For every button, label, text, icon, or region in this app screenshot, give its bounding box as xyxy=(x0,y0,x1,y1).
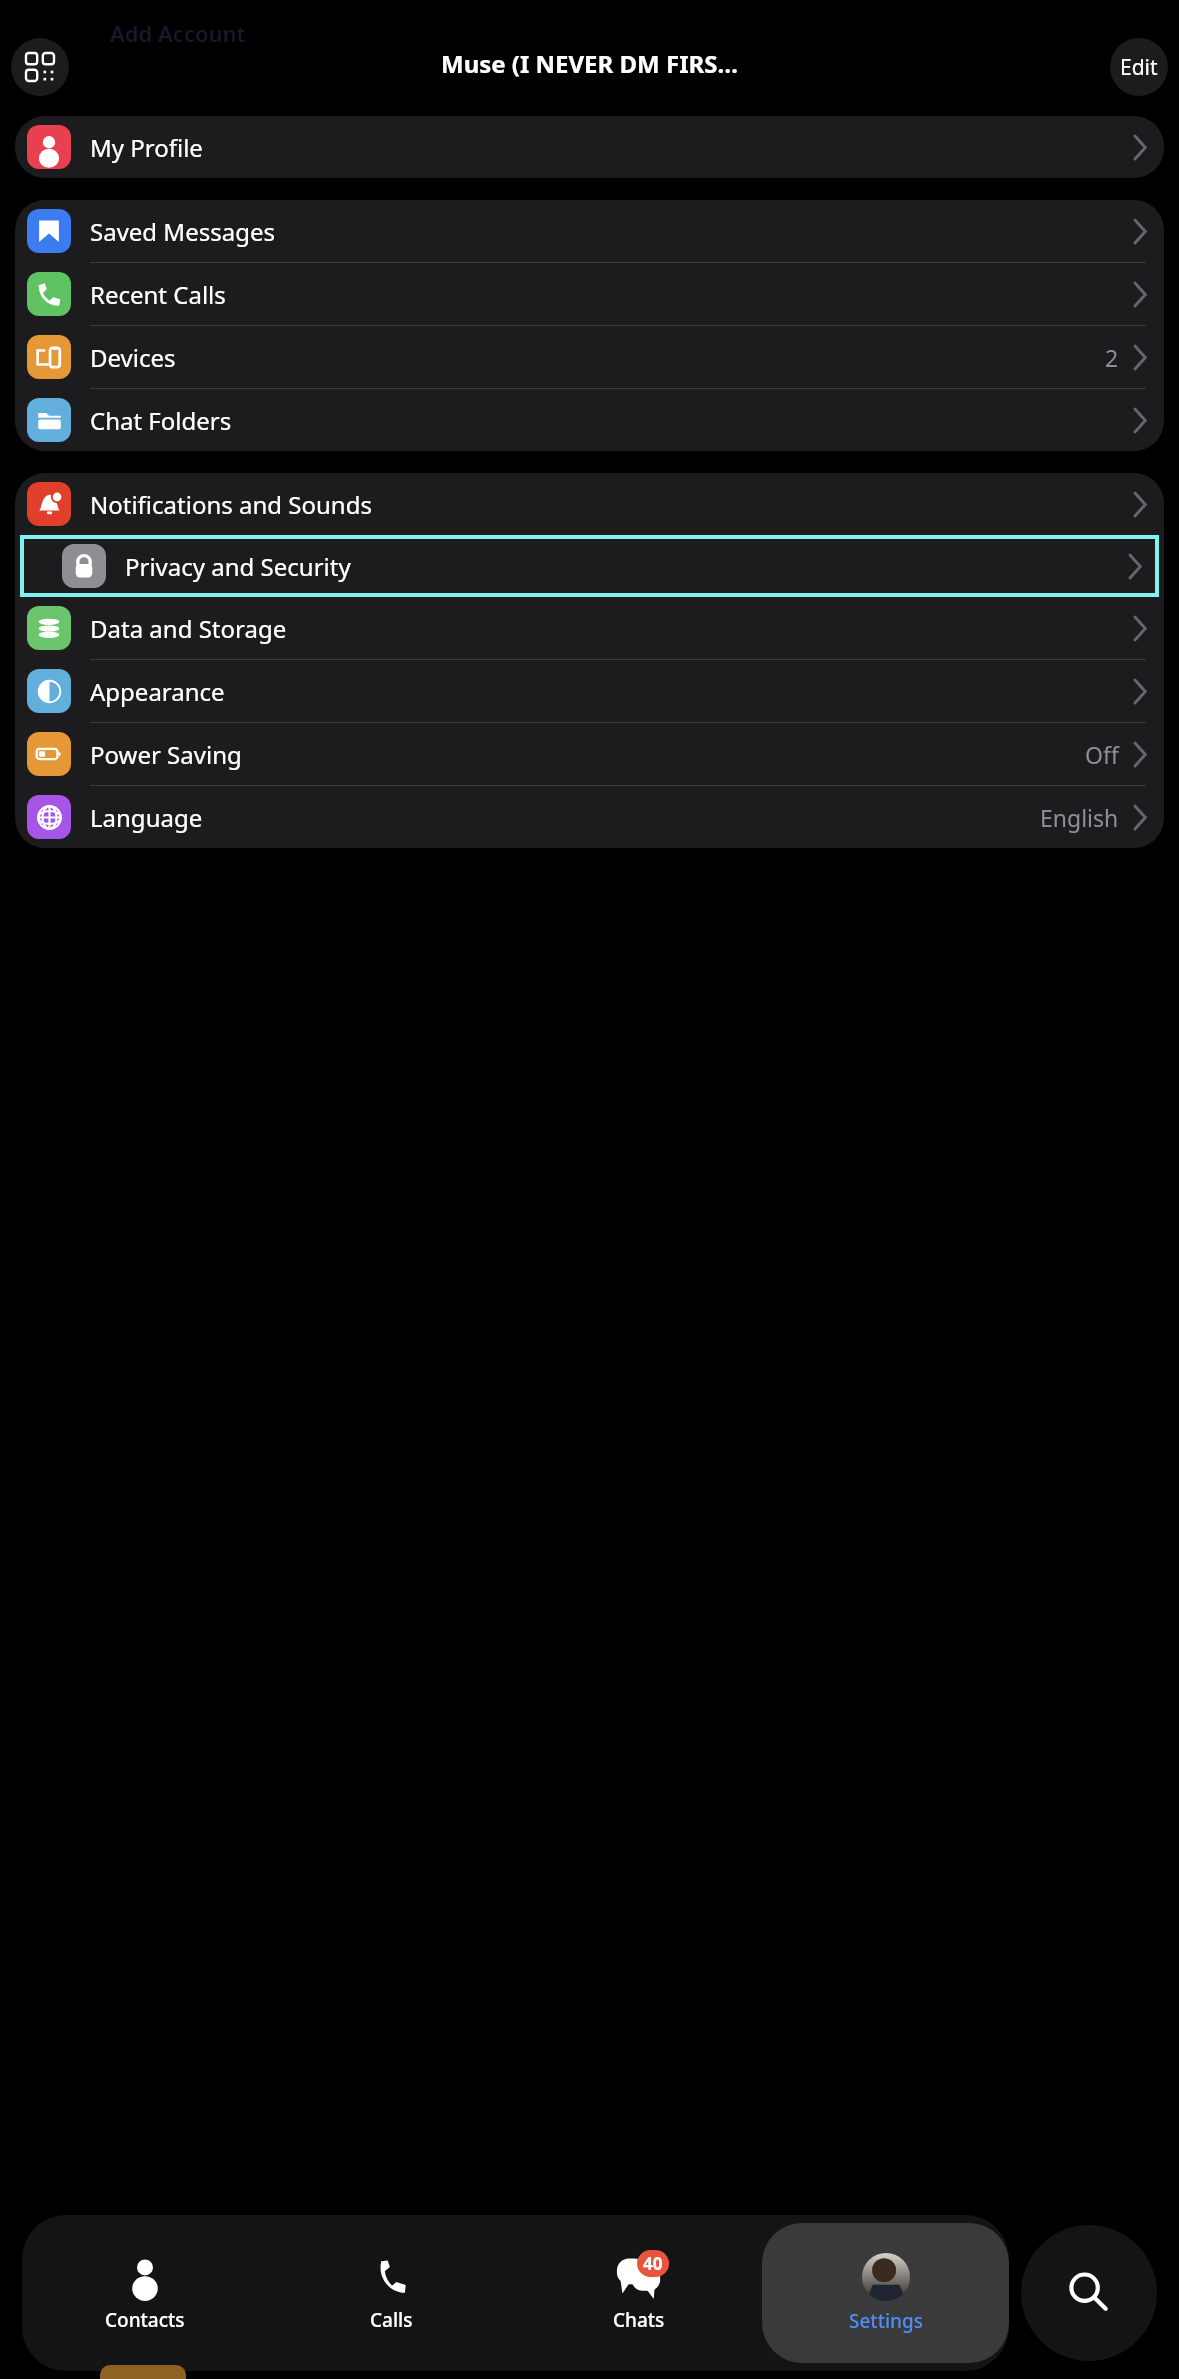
button[interactable]: Language xyxy=(15,786,1164,848)
button[interactable]: 40 xyxy=(515,2215,762,2371)
staticText: Off xyxy=(1085,739,1119,770)
button[interactable]: Contacts xyxy=(22,2215,268,2371)
staticText: Privacy and Security xyxy=(125,550,1128,583)
button[interactable]: Notifications and Sounds xyxy=(15,473,1164,535)
staticText: Add Account xyxy=(110,18,246,48)
button[interactable]: Privacy and Security xyxy=(20,535,1159,597)
button[interactable]: Calls xyxy=(268,2215,515,2371)
button[interactable]: Power Saving xyxy=(15,723,1164,785)
staticText: Settings xyxy=(849,2308,923,2334)
staticText: Recent Calls xyxy=(90,278,1133,311)
staticText: Calls xyxy=(370,2307,413,2333)
staticText: Chat Folders xyxy=(90,404,1133,437)
staticText: Notifications and Sounds xyxy=(90,488,1133,521)
button[interactable]: Chat Folders xyxy=(15,389,1164,451)
staticText: Contacts xyxy=(105,2307,185,2333)
button[interactable]: Scan QR code xyxy=(11,38,69,96)
button[interactable]: Settings xyxy=(762,2223,1009,2363)
staticText: Muse (I NEVER DM FIRS… xyxy=(441,47,738,80)
staticText: Devices xyxy=(90,341,1105,374)
staticText: Power Saving xyxy=(90,738,1085,771)
button[interactable]: Appearance xyxy=(15,660,1164,722)
button[interactable]: My Profile xyxy=(15,116,1164,178)
staticText: English xyxy=(1040,802,1119,833)
staticText: Appearance xyxy=(90,675,1133,708)
button[interactable]: Search xyxy=(1021,2225,1157,2361)
staticText: 40 xyxy=(643,2252,663,2275)
staticText: Chats xyxy=(613,2307,665,2333)
button[interactable]: Edit xyxy=(1110,38,1168,96)
button[interactable]: Saved Messages xyxy=(15,200,1164,262)
staticText: Edit xyxy=(1120,53,1158,82)
staticText: 2 xyxy=(1105,342,1119,373)
button[interactable]: Data and Storage xyxy=(15,597,1164,659)
staticText: Data and Storage xyxy=(90,612,1133,645)
button[interactable]: Recent Calls xyxy=(15,263,1164,325)
button[interactable]: Privacy and Security xyxy=(20,535,1159,597)
staticText: Language xyxy=(90,801,1040,834)
staticText: My Profile xyxy=(90,131,1133,164)
button[interactable]: Devices xyxy=(15,326,1164,388)
staticText: Saved Messages xyxy=(90,215,1133,248)
